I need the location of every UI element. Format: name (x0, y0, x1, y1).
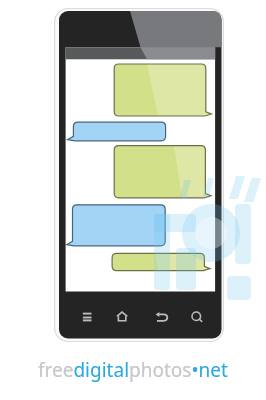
button[interactable]: Menu (79, 308, 96, 325)
button[interactable]: Search (189, 308, 206, 325)
button[interactable]: Home (114, 308, 131, 325)
button[interactable]: Back (151, 308, 168, 325)
staticText: freedigitalphotos•net (38, 357, 228, 383)
